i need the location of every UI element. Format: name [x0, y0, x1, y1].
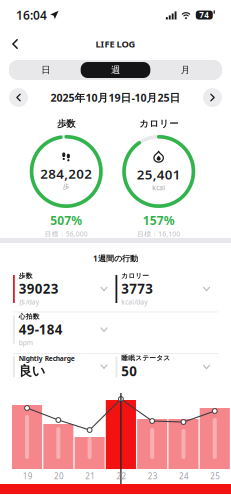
staticText: 2025年10月19日-10月25日 [50, 90, 180, 105]
staticText: 歩/day [19, 297, 39, 306]
staticText: 目標：56,000 [45, 229, 88, 238]
staticText: 39023 [19, 280, 59, 297]
staticText: 49-184 [19, 320, 63, 338]
staticText: kcal/day [121, 297, 147, 306]
staticText: 歩 [63, 182, 70, 191]
staticText: 1週間の行動 [93, 253, 138, 264]
staticText: 157% [143, 212, 175, 228]
staticText: 目標：16,100 [137, 229, 180, 238]
button[interactable]: Back [3, 34, 27, 54]
staticText: 3773 [121, 280, 153, 297]
staticText: 16:04 [16, 7, 47, 23]
staticText: 74 [199, 10, 209, 20]
button[interactable]: 週 [81, 62, 150, 78]
button[interactable]: Previous week [9, 88, 28, 107]
staticText: 19 [23, 471, 33, 481]
staticText: 20 [54, 471, 64, 481]
staticText: 284,202 [40, 165, 92, 182]
button[interactable]: Next week [203, 88, 222, 107]
staticText: bpm [19, 338, 33, 347]
staticText: 22 [116, 471, 126, 481]
staticText: 23 [148, 471, 158, 481]
staticText: 24 [179, 471, 189, 481]
staticText: 週 [111, 64, 120, 76]
staticText: 25,401 [137, 165, 181, 183]
staticText: 日 [41, 64, 50, 76]
button[interactable]: 歩数 [13, 272, 115, 312]
button[interactable]: 睡眠ステータス [115, 354, 218, 390]
staticText: 歩数 [19, 272, 33, 280]
staticText: 歩数 [57, 118, 75, 129]
staticText: 睡眠ステータス [121, 354, 170, 362]
button[interactable]: 心拍数 [13, 312, 115, 353]
staticText: 507% [50, 212, 82, 228]
staticText: 25 [210, 471, 220, 481]
staticText: 心拍数 [19, 312, 40, 320]
staticText: LIFE LOG [95, 38, 135, 50]
staticText: 21 [85, 471, 95, 481]
staticText: kcal [152, 183, 165, 192]
staticText: カロリー [121, 272, 149, 280]
staticText: 50 [121, 362, 137, 380]
staticText: Nightly Recharge [19, 354, 75, 363]
staticText: カロリー [139, 118, 178, 129]
button[interactable]: カロリー [115, 272, 218, 312]
button[interactable]: 日 [11, 62, 81, 78]
button[interactable]: 月 [150, 62, 220, 78]
staticText: 月 [181, 64, 190, 76]
staticText: 良い [19, 363, 46, 379]
button[interactable]: Nightly Recharge [13, 354, 115, 390]
